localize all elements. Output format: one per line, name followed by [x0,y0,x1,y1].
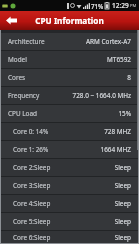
button[interactable]: Core 5:Sleep [1,213,138,230]
staticText: Model [8,55,27,64]
staticText: 728 MHZ [104,127,131,136]
staticText: MT6592 [107,55,131,64]
button[interactable]: Core 3:Sleep [1,177,138,194]
button[interactable]: Core 6:Sleep [1,231,138,243]
button[interactable]: Core 0: 14% [1,123,138,140]
staticText: CPU Information [35,15,104,26]
button[interactable]: Back [0,11,22,30]
button[interactable]: Core 2:Sleep [1,159,138,176]
staticText: 71% [91,2,104,10]
button[interactable]: Core 4:Sleep [1,195,138,212]
button[interactable]: Core 1: 26% [1,141,138,158]
button[interactable]: CPU Load [1,105,138,122]
staticText: Core 4:Sleep [13,199,51,208]
staticText: Sleep [114,199,131,208]
staticText: Core 1: 26% [13,145,49,154]
staticText: 728.0 ~ 1664.0 MHz [72,91,131,100]
button[interactable]: Frequency [1,87,138,104]
staticText: Sleep [114,181,131,190]
staticText: Cores [8,73,26,82]
button[interactable]: Cores [1,69,138,86]
staticText: Architecture [8,37,45,46]
staticText: 8 [127,73,131,82]
staticText: 15% [118,109,131,118]
staticText: Sleep [114,217,131,226]
staticText: Sleep [114,233,131,242]
staticText: Core 6:Sleep [13,233,51,242]
button[interactable]: Architecture [1,33,138,50]
staticText: PM [130,3,137,9]
staticText: Frequency [8,91,40,100]
staticText: Core 0: 14% [13,127,49,136]
staticText: 12:29 [112,1,129,10]
staticText: Core 5:Sleep [13,217,51,226]
staticText: 1664 MHZ [100,145,131,154]
staticText: CPU Load [8,109,37,118]
staticText: Sleep [114,163,131,172]
staticText: Core 3:Sleep [13,181,51,190]
staticText: ARM Cortex-A7 [85,37,131,46]
button[interactable]: Model [1,51,138,68]
staticText: Core 2:Sleep [13,163,51,172]
